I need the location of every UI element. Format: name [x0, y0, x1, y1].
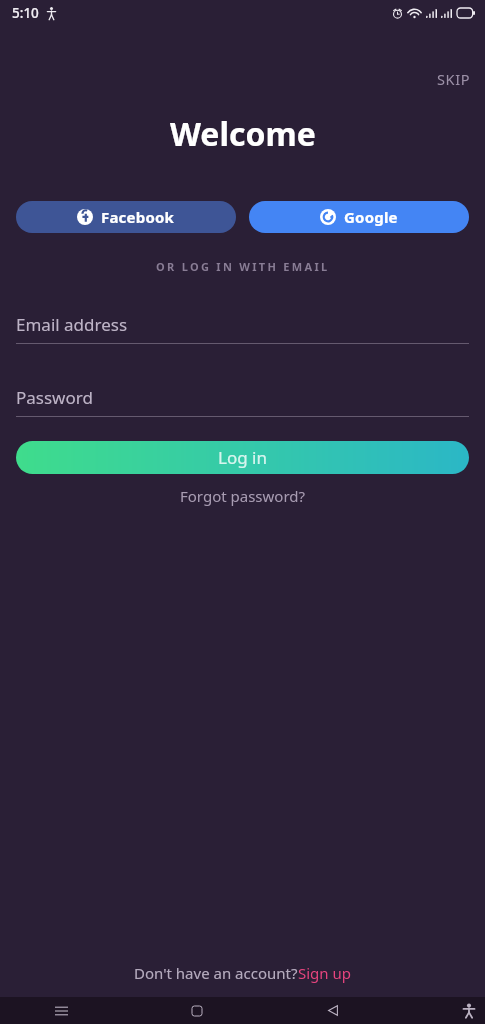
button[interactable]: Google — [249, 201, 469, 233]
button[interactable]: Facebook — [16, 201, 236, 233]
staticText: 5:10 — [12, 4, 39, 22]
button[interactable]: Email address — [16, 313, 469, 344]
button[interactable]: SKIP — [423, 64, 485, 94]
staticText: Forgot password? — [180, 486, 306, 506]
button[interactable]: Password — [16, 386, 469, 417]
staticText: SKIP — [437, 69, 471, 89]
staticText: Don't have an account? — [134, 963, 298, 983]
staticText: Facebook — [101, 207, 175, 227]
staticText: Sign up — [298, 963, 351, 983]
staticText: OR LOG IN WITH EMAIL — [156, 259, 330, 274]
button[interactable]: Accessibility — [455, 997, 482, 1024]
button[interactable]: Sign up — [298, 963, 351, 983]
button[interactable]: Recent apps — [48, 997, 75, 1024]
staticText: Google — [344, 207, 398, 227]
button[interactable]: Back — [319, 997, 346, 1024]
button[interactable]: Forgot password? — [168, 481, 318, 511]
staticText: Password — [16, 386, 93, 409]
staticText: Email address — [16, 313, 128, 336]
button[interactable]: Log in — [16, 441, 469, 474]
staticText: Welcome — [170, 112, 316, 156]
staticText: Log in — [218, 446, 267, 469]
button[interactable]: Home — [183, 997, 210, 1024]
